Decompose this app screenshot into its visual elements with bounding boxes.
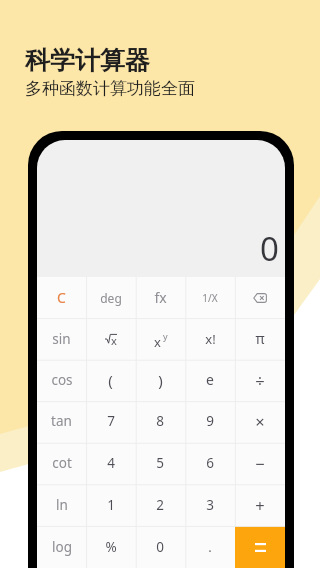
button[interactable]: −	[235, 442, 285, 484]
staticText: 7	[107, 412, 115, 430]
button[interactable]: 5	[135, 442, 185, 484]
button[interactable]: 4	[86, 442, 135, 484]
staticText: fx	[154, 288, 167, 307]
button[interactable]: .	[185, 526, 235, 568]
staticText: 9	[206, 412, 214, 430]
staticText: 3	[206, 496, 214, 514]
button[interactable]: 1	[86, 484, 135, 526]
staticText: x	[111, 333, 117, 348]
staticText: )	[158, 370, 163, 390]
button[interactable]: (	[86, 359, 135, 400]
button[interactable]: +	[235, 484, 285, 526]
staticText: %	[105, 538, 117, 556]
button[interactable]: 2	[135, 484, 185, 526]
staticText: 0	[156, 538, 164, 556]
button[interactable]: x	[135, 318, 185, 359]
staticText: 2	[156, 496, 164, 514]
button[interactable]: x	[86, 318, 135, 359]
staticText: 1	[107, 496, 115, 514]
staticText: (	[108, 370, 113, 390]
button[interactable]: cos	[37, 359, 86, 400]
button[interactable]: ln	[37, 484, 86, 526]
button[interactable]: π	[235, 318, 285, 359]
staticText: e	[206, 370, 214, 389]
staticText: tan	[51, 412, 72, 430]
staticText: −	[255, 452, 265, 474]
button[interactable]: tan	[37, 400, 86, 442]
other: Equals	[255, 543, 266, 552]
staticText: ×	[255, 410, 265, 432]
staticText: C	[57, 288, 66, 307]
staticText: cot	[52, 454, 72, 472]
staticText: y	[163, 330, 168, 342]
staticText: 6	[206, 454, 214, 472]
staticText: 4	[107, 454, 115, 472]
button[interactable]: fx	[135, 277, 185, 318]
staticText: .	[208, 538, 212, 556]
button[interactable]: %	[86, 526, 135, 568]
staticText: 多种函数计算功能全面	[25, 78, 195, 99]
staticText: deg	[100, 290, 122, 306]
button[interactable]: 9	[185, 400, 235, 442]
staticText: 8	[156, 412, 164, 430]
button[interactable]: 0	[135, 526, 185, 568]
button[interactable]: 7	[86, 400, 135, 442]
staticText: x!	[205, 330, 216, 348]
button[interactable]: ×	[235, 400, 285, 442]
staticText: +	[255, 494, 265, 516]
button[interactable]: sin	[37, 318, 86, 359]
button[interactable]: e	[185, 359, 235, 400]
button[interactable]: 8	[135, 400, 185, 442]
button[interactable]: cot	[37, 442, 86, 484]
button[interactable]: Equals	[235, 526, 285, 568]
staticText: 0	[260, 226, 279, 271]
button[interactable]: 3	[185, 484, 235, 526]
staticText: 5	[156, 454, 164, 472]
staticText: ÷	[255, 369, 265, 391]
staticText: 科学计算器	[25, 45, 150, 76]
button[interactable]: 6	[185, 442, 235, 484]
staticText: ln	[56, 496, 68, 514]
button[interactable]: C	[37, 277, 86, 318]
staticText: π	[255, 329, 265, 348]
button[interactable]: )	[135, 359, 185, 400]
button[interactable]: Backspace	[235, 277, 285, 318]
other: Backspace	[253, 293, 267, 303]
button[interactable]: log	[37, 526, 86, 568]
staticText: log	[52, 538, 72, 556]
button[interactable]: ÷	[235, 359, 285, 400]
staticText: 1/X	[202, 291, 218, 305]
staticText: sin	[52, 330, 71, 348]
staticText: x	[154, 333, 161, 349]
button[interactable]: deg	[86, 277, 135, 318]
button[interactable]: 1/X	[185, 277, 235, 318]
staticText: cos	[51, 371, 73, 389]
button[interactable]: x!	[185, 318, 235, 359]
